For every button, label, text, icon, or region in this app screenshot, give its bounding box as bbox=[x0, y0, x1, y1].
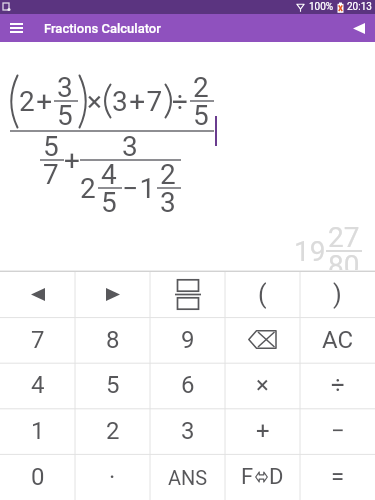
staticText: × bbox=[87, 85, 104, 118]
staticText: ÷ bbox=[331, 371, 345, 399]
button[interactable]: 5 bbox=[75, 362, 150, 408]
staticText: ) bbox=[333, 280, 342, 309]
staticText: 2 bbox=[106, 417, 120, 445]
button[interactable]: 7 bbox=[0, 317, 75, 362]
staticText: ÷ bbox=[172, 85, 190, 118]
staticText: Fractions Calculator bbox=[44, 21, 161, 36]
button[interactable] bbox=[349, 15, 369, 41]
button[interactable]: 1 bbox=[0, 408, 75, 454]
button[interactable]: ANS bbox=[150, 454, 225, 500]
staticText: 0 bbox=[31, 463, 45, 491]
staticText: 4 bbox=[101, 158, 119, 191]
staticText: 3 bbox=[160, 186, 178, 219]
button[interactable]: 8 bbox=[75, 317, 150, 362]
staticText: 5 bbox=[193, 99, 211, 132]
button[interactable]: 9 bbox=[150, 317, 225, 362]
staticText: 100% bbox=[309, 1, 334, 13]
staticText: 6 bbox=[181, 371, 195, 399]
button[interactable]: + bbox=[225, 408, 300, 454]
staticText: 2 bbox=[193, 71, 211, 104]
button[interactable]: − bbox=[300, 408, 375, 454]
staticText: 2+ bbox=[19, 85, 54, 118]
button[interactable]: = bbox=[300, 454, 375, 500]
staticText: 4 bbox=[31, 371, 45, 399]
staticText: ( bbox=[258, 280, 267, 309]
staticText: 3 bbox=[122, 130, 140, 163]
staticText: + bbox=[64, 144, 82, 177]
staticText: 3+7 bbox=[112, 85, 164, 118]
staticText: 8 bbox=[106, 326, 120, 354]
button[interactable] bbox=[225, 317, 300, 362]
button[interactable]: ÷ bbox=[300, 362, 375, 408]
button[interactable] bbox=[0, 272, 75, 317]
staticText: 9 bbox=[181, 326, 195, 354]
staticText: · bbox=[109, 463, 116, 491]
staticText: = bbox=[331, 463, 345, 491]
staticText: 3 bbox=[57, 71, 75, 104]
staticText: 3 bbox=[181, 417, 195, 445]
staticText: + bbox=[256, 417, 270, 445]
staticText: × bbox=[256, 371, 269, 399]
staticText: F bbox=[241, 464, 254, 490]
button[interactable]: × bbox=[225, 362, 300, 408]
staticText: −1 bbox=[122, 172, 157, 205]
button[interactable]: 2 bbox=[75, 408, 150, 454]
staticText: 7 bbox=[43, 158, 61, 191]
staticText: D bbox=[269, 464, 284, 490]
staticText: 5 bbox=[106, 371, 120, 399]
staticText: 5 bbox=[57, 99, 75, 132]
staticText: 5 bbox=[101, 186, 119, 219]
button[interactable]: 3 bbox=[150, 408, 225, 454]
button[interactable]: 0 bbox=[0, 454, 75, 500]
staticText: 2 bbox=[80, 172, 98, 205]
button[interactable] bbox=[4, 14, 28, 42]
staticText: AC bbox=[322, 326, 354, 354]
button[interactable]: AC bbox=[300, 317, 375, 362]
staticText: 5 bbox=[43, 130, 61, 163]
staticText: 1 bbox=[31, 417, 45, 445]
button[interactable]: 4 bbox=[0, 362, 75, 408]
staticText: 7 bbox=[31, 326, 45, 354]
button[interactable]: · bbox=[75, 454, 150, 500]
button[interactable]: 6 bbox=[150, 362, 225, 408]
staticText: ANS bbox=[168, 466, 208, 489]
staticText: 20:13 bbox=[347, 1, 372, 13]
button[interactable] bbox=[150, 272, 225, 317]
staticText: 27 bbox=[328, 221, 360, 254]
staticText: 80 bbox=[328, 249, 360, 282]
button[interactable]: ( bbox=[225, 272, 300, 317]
button[interactable]: ) bbox=[300, 272, 375, 317]
staticText: 19 bbox=[294, 235, 326, 268]
button[interactable]: F bbox=[225, 454, 300, 500]
staticText: − bbox=[331, 417, 345, 445]
button[interactable] bbox=[75, 272, 150, 317]
staticText: 2 bbox=[160, 158, 178, 191]
